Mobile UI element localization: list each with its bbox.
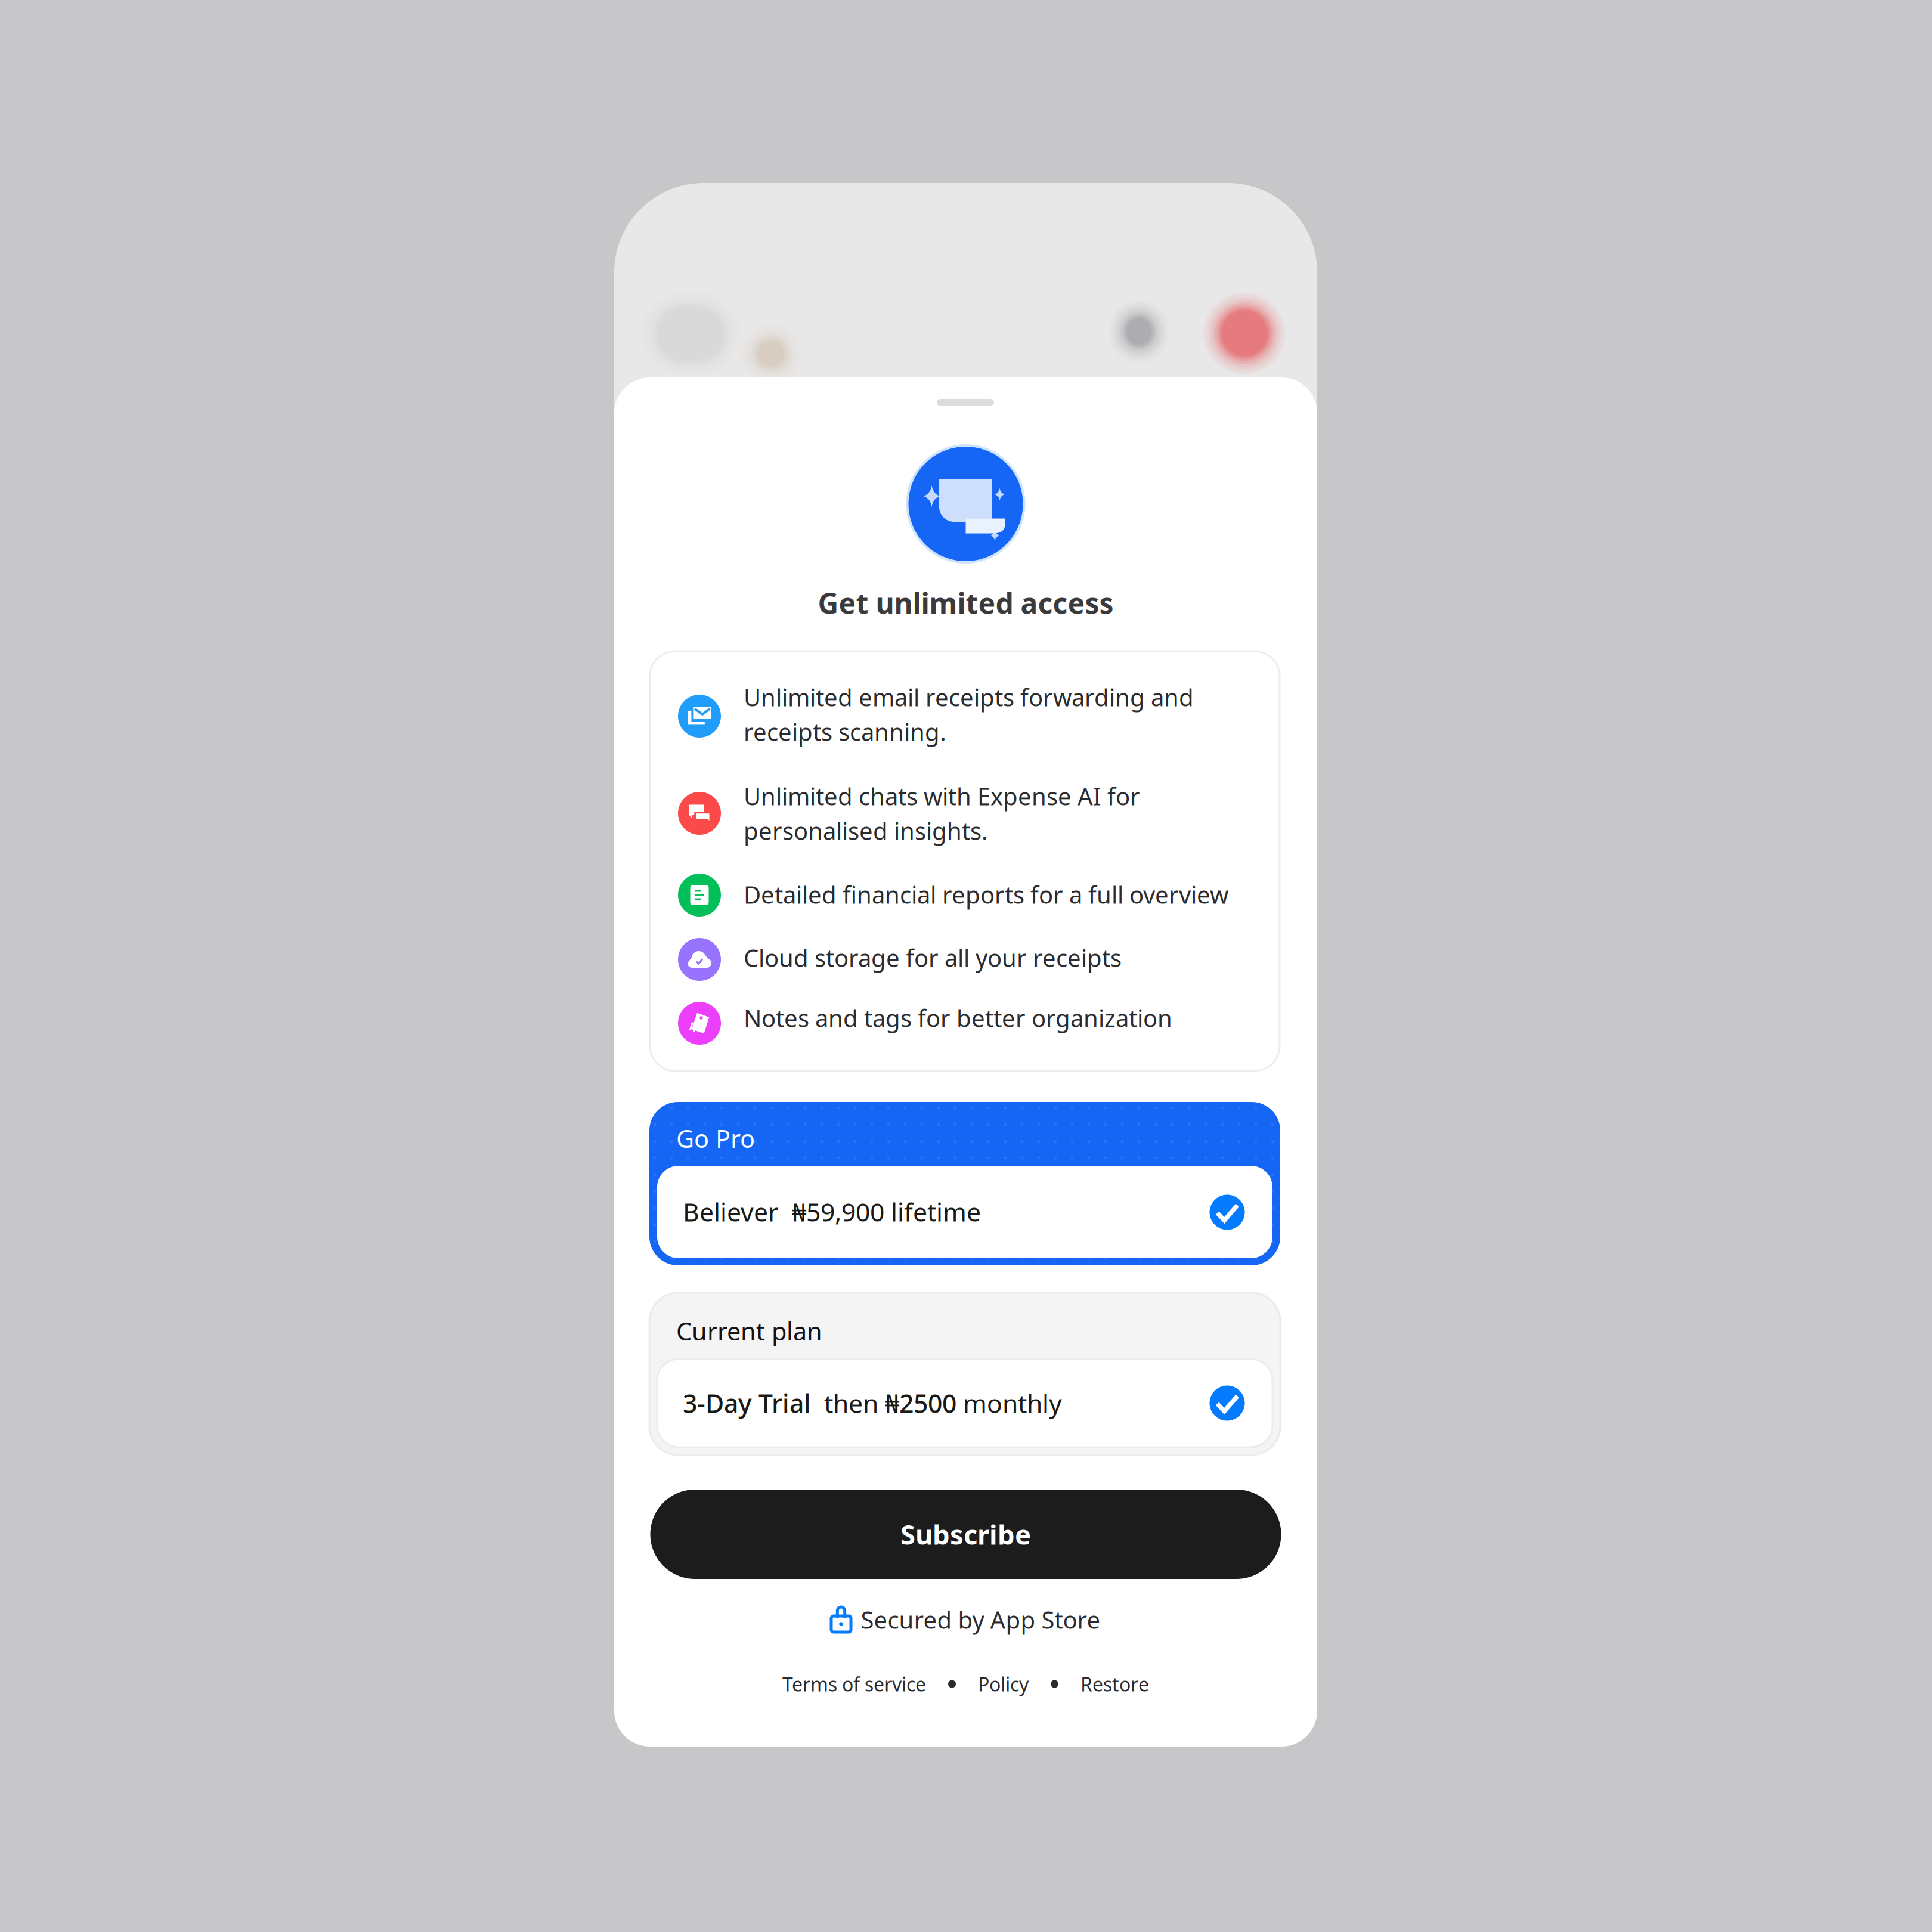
staticText: Restore — [1080, 1671, 1149, 1697]
staticText: Get unlimited access — [818, 584, 1114, 622]
button[interactable]: Current plan — [649, 1293, 1280, 1455]
button[interactable]: Terms of service — [782, 1671, 926, 1697]
staticText: Unlimited email receipts forwarding and … — [744, 681, 1194, 748]
staticText: Unlimited chats with Expense AI for pers… — [744, 780, 1140, 847]
staticText: Go Pro — [676, 1122, 755, 1155]
button[interactable]: Restore — [1080, 1671, 1149, 1697]
staticText: Terms of service — [782, 1671, 926, 1697]
staticText: 3-Day Trial then ₦2500 monthly — [683, 1386, 1062, 1420]
staticText: Detailed financial reports for a full ov… — [744, 879, 1228, 910]
button[interactable]: Policy — [978, 1671, 1029, 1697]
staticText: Believer ₦59,900 lifetime — [683, 1195, 981, 1229]
button[interactable]: Subscribe — [650, 1490, 1281, 1579]
staticText: Notes and tags for better organization — [744, 1002, 1172, 1034]
staticText: Subscribe — [900, 1516, 1031, 1552]
staticText: Secured by App Store — [861, 1604, 1100, 1635]
button[interactable]: Go Pro — [649, 1102, 1280, 1265]
staticText: Cloud storage for all your receipts — [744, 942, 1122, 973]
staticText: Current plan — [676, 1315, 822, 1347]
staticText: Policy — [978, 1671, 1029, 1697]
